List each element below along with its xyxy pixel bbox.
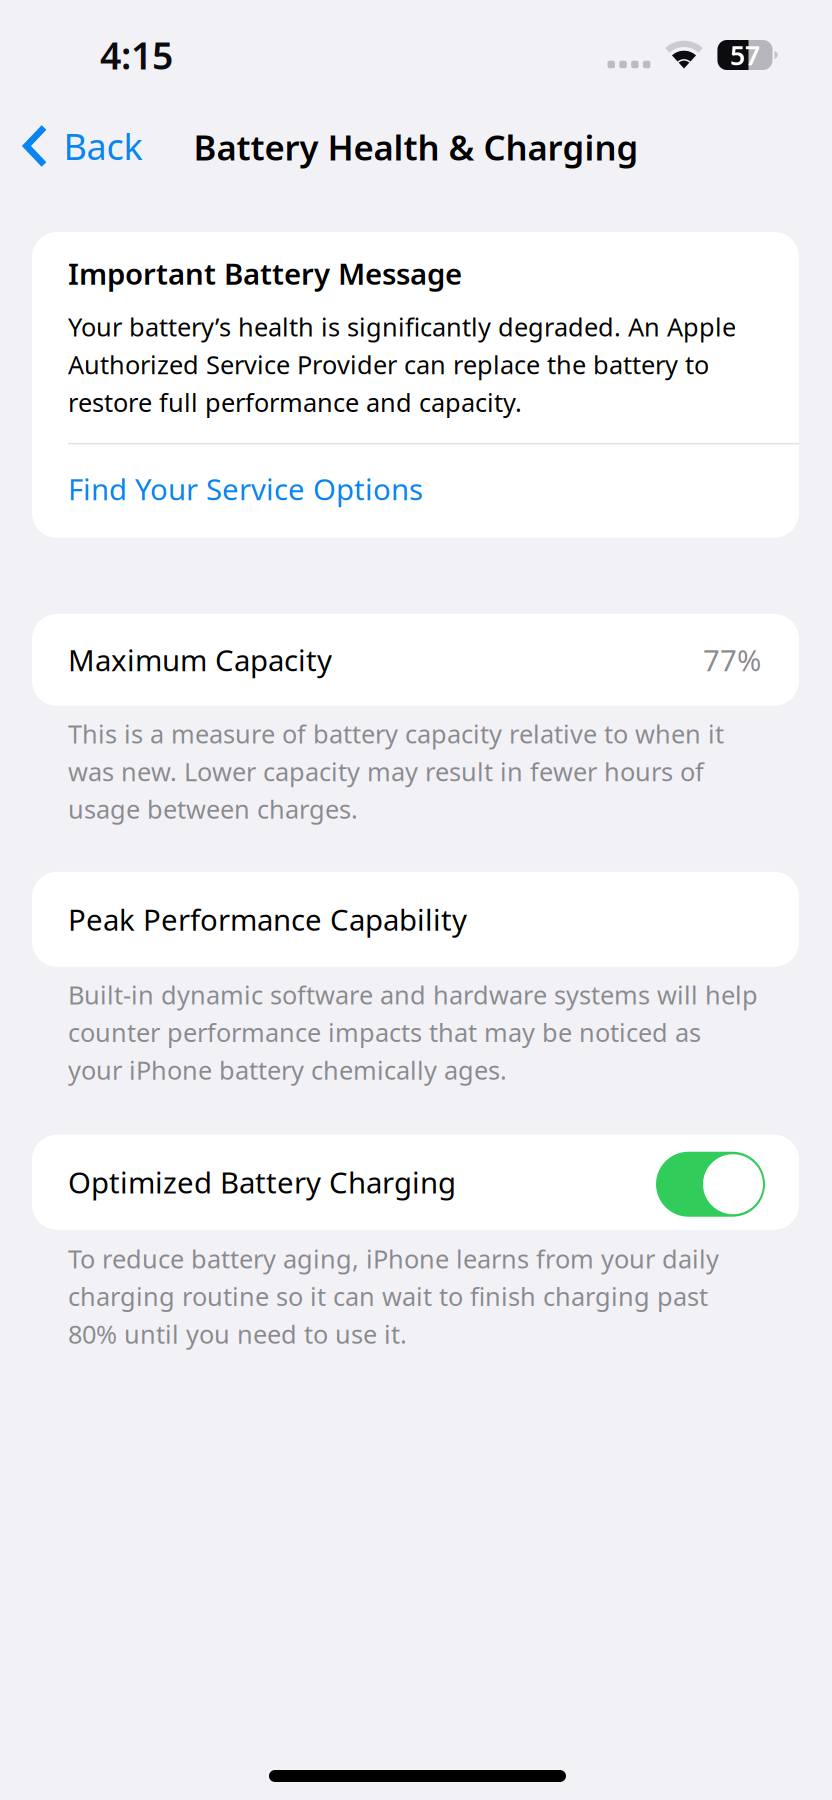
button[interactable]: Peak Performance Capability bbox=[32, 872, 799, 967]
staticText: Back bbox=[63, 122, 142, 170]
staticText: 4:15 bbox=[100, 30, 173, 80]
staticText: Optimized Battery Charging bbox=[68, 1163, 456, 1202]
staticText: Battery Health & Charging bbox=[193, 124, 638, 170]
staticText: Your battery’s health is significantly d… bbox=[68, 310, 736, 419]
staticText: Maximum Capacity bbox=[68, 640, 332, 679]
staticText: This is a measure of battery capacity re… bbox=[68, 717, 724, 826]
staticText: 57 bbox=[730, 37, 760, 73]
staticText: Peak Performance Capability bbox=[68, 900, 467, 939]
staticText: Important Battery Message bbox=[68, 254, 462, 293]
button[interactable]: Back bbox=[0, 113, 142, 179]
staticText: Built-in dynamic software and hardware s… bbox=[68, 978, 758, 1087]
button[interactable]: Find Your Service Options bbox=[68, 444, 799, 538]
staticText: To reduce battery aging, iPhone learns f… bbox=[68, 1242, 719, 1351]
button[interactable]: Optimized Battery Charging bbox=[656, 1150, 765, 1215]
staticText: Find Your Service Options bbox=[68, 469, 423, 508]
staticText: 77% bbox=[703, 640, 761, 679]
